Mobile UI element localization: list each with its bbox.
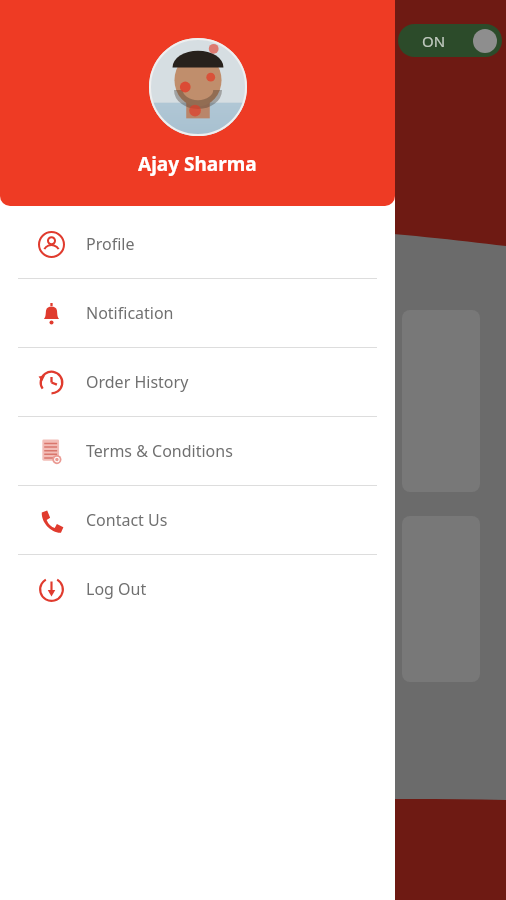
staticText: Terms & Conditions — [86, 440, 233, 462]
button[interactable]: Log Out — [4, 555, 391, 623]
staticText: Notification — [86, 302, 174, 324]
staticText: Contact Us — [86, 509, 168, 531]
button[interactable]: Profile — [4, 210, 391, 278]
button[interactable]: Order History — [4, 348, 391, 416]
staticText: Order History — [86, 371, 189, 393]
staticText: ON — [422, 31, 446, 51]
staticText: Log Out — [86, 578, 147, 600]
staticText: Ajay Sharma — [138, 151, 257, 177]
button[interactable]: Notification — [4, 279, 391, 347]
button[interactable]: Terms & Conditions — [4, 417, 391, 485]
staticText: Profile — [86, 233, 135, 255]
button[interactable]: Toggle ON — [398, 24, 502, 57]
button[interactable]: Contact Us — [4, 486, 391, 554]
